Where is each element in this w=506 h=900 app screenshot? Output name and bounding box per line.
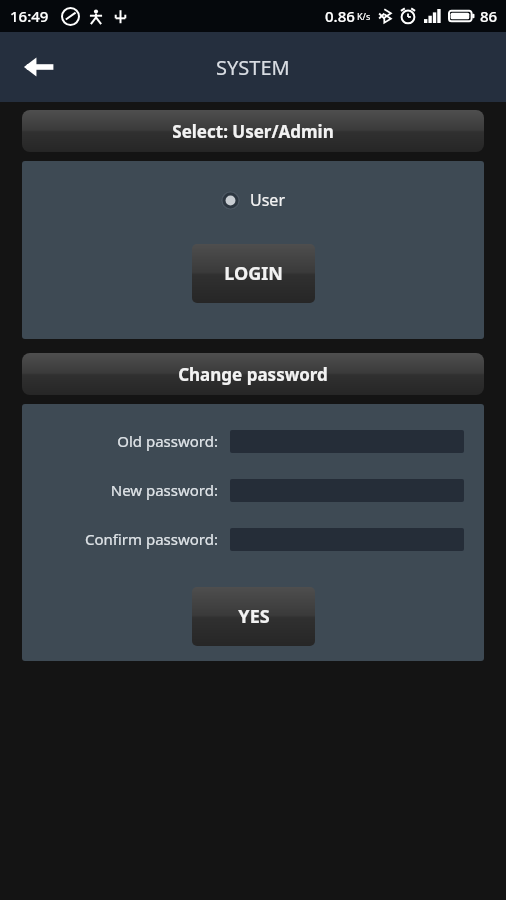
staticText: LOGIN [224, 261, 283, 286]
staticText: 16:49 [10, 6, 49, 26]
staticText: User [250, 189, 285, 211]
staticText: 0.86 [325, 6, 355, 26]
button[interactable]: LOGIN [192, 244, 315, 303]
staticText: Select: User/Admin [172, 120, 334, 143]
staticText: New password: [110, 480, 218, 500]
staticText: Confirm password: [85, 529, 218, 549]
staticText: Old password: [117, 431, 218, 451]
button[interactable]: YES [192, 587, 315, 646]
button[interactable]: Back [12, 40, 66, 94]
staticText: SYSTEM [216, 54, 290, 81]
button[interactable]: Select: User/Admin [22, 110, 484, 152]
staticText: YES [238, 604, 270, 629]
staticText: K/s [357, 10, 371, 22]
button[interactable]: Change password [22, 353, 484, 395]
button[interactable]: User [217, 187, 289, 213]
staticText: Change password [178, 363, 328, 386]
staticText: 86 [480, 6, 498, 26]
